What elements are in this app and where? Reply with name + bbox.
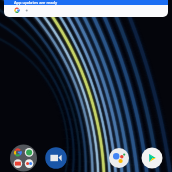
button[interactable]: App updates are ready — [4, 0, 168, 17]
staticText: App updates are ready — [14, 0, 58, 5]
